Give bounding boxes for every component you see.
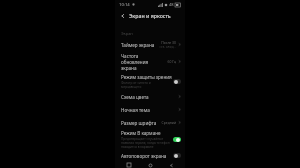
staticText: Схема цвета [121,94,149,100]
button[interactable]: Автоповорот экрана [115,149,185,162]
button[interactable]: Home [143,162,157,168]
staticText: 60 Гц [167,59,176,64]
staticText: После 30 [161,40,176,45]
button[interactable]: Back [164,162,178,168]
button[interactable]: Режим защиты зрения [115,72,185,90]
staticText: Частота обновления экрана [121,53,149,71]
staticText: Средний [161,120,176,125]
staticText: 10:14 [119,2,130,8]
button[interactable]: Схема цвета [115,90,185,103]
button[interactable]: Recents [122,162,136,168]
button[interactable]: Размер шрифта [115,116,185,129]
button[interactable]: Ночная тема [115,103,185,116]
staticText: Фильтр от синего и мерцающего [121,81,151,89]
staticText: Экран [121,31,133,36]
staticText: Таймер экрана [121,42,155,48]
button[interactable]: Back [119,12,127,20]
staticText: Режим В кармане [121,130,161,136]
button[interactable]: Таймер экрана [115,38,185,51]
staticText: Режим защиты зрения [121,74,172,80]
staticText: Предотвращает случайные нажатия экрана, … [121,137,170,149]
staticText: Ночная тема [121,107,150,113]
button[interactable]: Частота обновления экрана [115,51,185,72]
button[interactable]: Режим В кармане [115,129,185,149]
staticText: Размер шрифта [121,120,157,126]
staticText: Экран и яркость [129,12,171,19]
staticText: сек. ожид... [159,45,176,49]
staticText: 48 [169,2,174,7]
staticText: Автоповорот экрана [121,153,167,159]
